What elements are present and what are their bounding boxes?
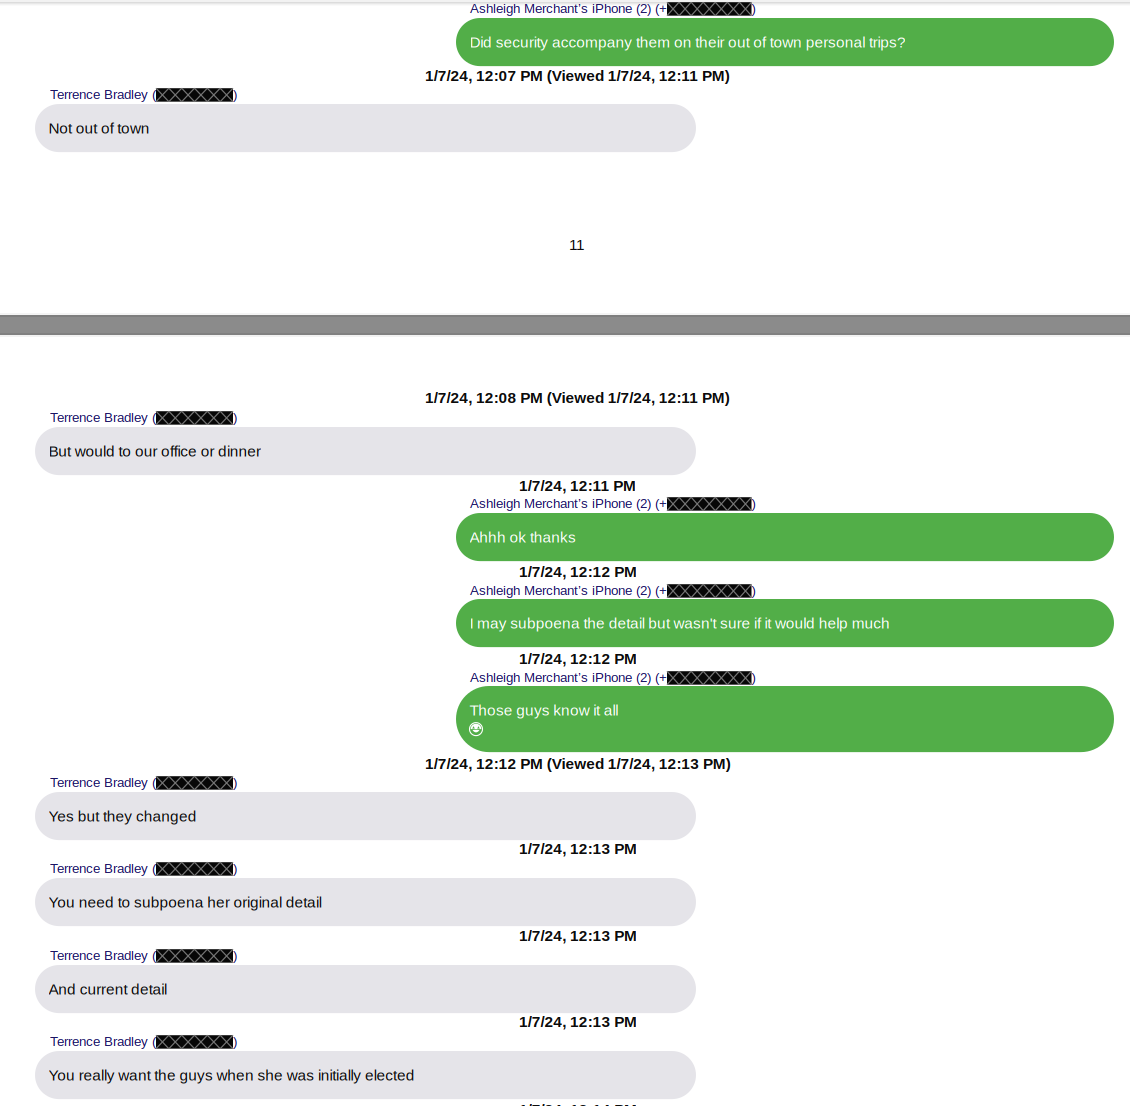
staticText: Ashleigh Merchant’s iPhone (2) (+ <box>470 1 667 16</box>
staticText: You need to subpoena her original detail <box>48 893 322 911</box>
staticText: You really want the guys when she was in… <box>48 1066 415 1084</box>
staticText: Terrence Bradley ( <box>50 775 156 790</box>
staticText: 1/7/24, 12:13 PM <box>519 840 637 857</box>
button[interactable]: Not out of town <box>35 104 696 152</box>
button[interactable]: Ahhh ok thanks <box>456 513 1114 561</box>
staticText: ) <box>751 1 755 16</box>
button[interactable]: Did security accompany them on their out… <box>456 18 1114 66</box>
staticText: ) <box>233 948 237 963</box>
staticText: ) <box>233 775 237 790</box>
staticText: But would to our office or dinner <box>48 442 261 460</box>
staticText: ) <box>233 861 237 876</box>
staticText: Ashleigh Merchant’s iPhone (2) (+ <box>470 670 667 685</box>
staticText: ) <box>233 87 237 102</box>
staticText: I may subpoena the detail but wasn't sur… <box>469 614 890 632</box>
staticText: Terrence Bradley ( <box>50 87 156 102</box>
button[interactable]: You need to subpoena her original detail <box>35 878 696 926</box>
staticText: ) <box>751 496 755 511</box>
staticText: 1/7/24, 12:12 PM <box>519 650 637 667</box>
staticText: 1/7/24, 12:13 PM <box>519 927 637 944</box>
staticText: 11 <box>569 236 585 253</box>
staticText: Did security accompany them on their out… <box>469 33 906 51</box>
staticText: Terrence Bradley ( <box>50 948 156 963</box>
staticText: Yes but they changed <box>48 807 197 825</box>
staticText: 1/7/24, 12:11 PM <box>519 477 636 494</box>
staticText: Terrence Bradley ( <box>50 410 156 425</box>
staticText: 1/7/24, 12:07 PM (Viewed 1/7/24, 12:11 P… <box>425 67 730 84</box>
button[interactable]: You really want the guys when she was in… <box>35 1051 696 1099</box>
staticText: Terrence Bradley ( <box>50 1034 156 1049</box>
staticText: Ashleigh Merchant’s iPhone (2) (+ <box>470 583 667 598</box>
staticText: 1/7/24, 12:08 PM (Viewed 1/7/24, 12:11 P… <box>425 389 730 406</box>
staticText: Those guys know it all <box>469 701 618 719</box>
staticText: Not out of town <box>48 119 150 137</box>
staticText: 1/7/24, 12:13 PM <box>519 1013 637 1030</box>
staticText: 1/7/24, 12:14 PM <box>519 1101 637 1106</box>
staticText: ) <box>751 670 755 685</box>
staticText: Terrence Bradley ( <box>50 861 156 876</box>
staticText: Ashleigh Merchant’s iPhone (2) (+ <box>470 496 667 511</box>
staticText: ) <box>233 410 237 425</box>
button[interactable]: Yes but they changed <box>35 792 696 840</box>
button[interactable]: But would to our office or dinner <box>35 427 696 475</box>
button[interactable]: Those guys know it all <box>456 686 1114 752</box>
button[interactable]: And current detail <box>35 965 696 1013</box>
staticText: 1/7/24, 12:12 PM (Viewed 1/7/24, 12:13 P… <box>425 755 731 772</box>
staticText: ) <box>751 583 755 598</box>
staticText: 1/7/24, 12:12 PM <box>519 563 637 580</box>
button[interactable]: I may subpoena the detail but wasn't sur… <box>456 599 1114 647</box>
staticText: ) <box>233 1034 237 1049</box>
staticText: And current detail <box>48 980 167 998</box>
staticText: Ahhh ok thanks <box>469 528 576 546</box>
